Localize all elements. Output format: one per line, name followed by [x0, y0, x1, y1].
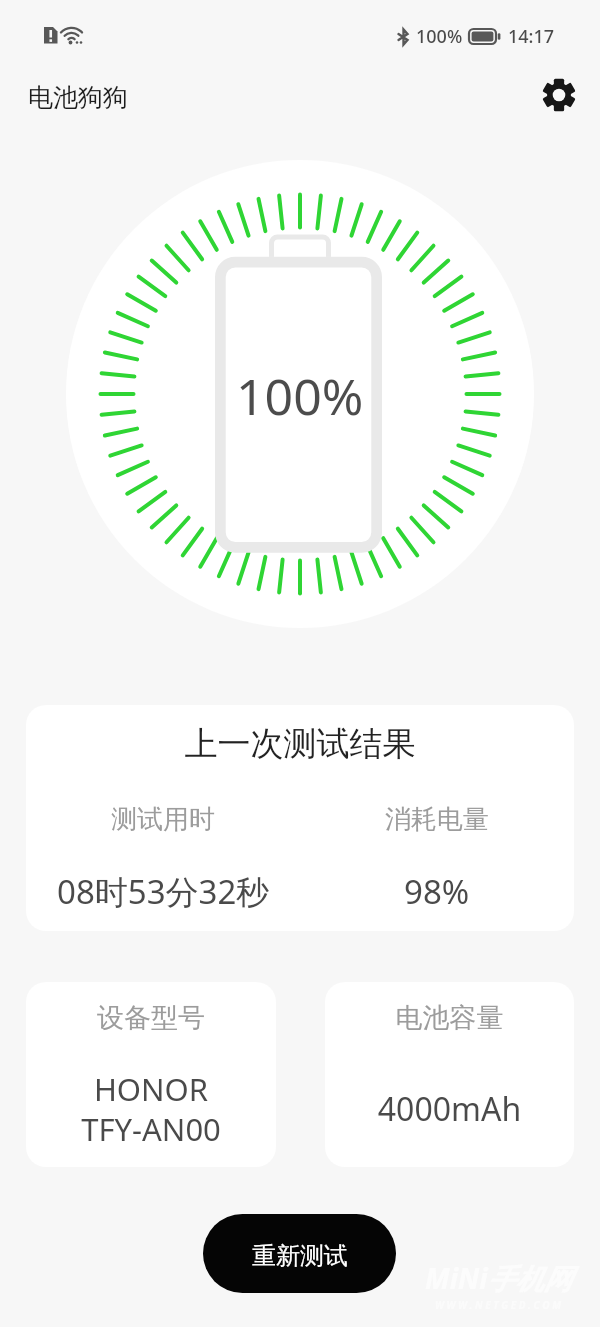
- staticText: 消耗电量: [385, 803, 489, 836]
- staticText: 08时53分32秒: [57, 869, 270, 914]
- button[interactable]: 上一次测试结果: [26, 705, 574, 931]
- staticText: 电池容量: [325, 1001, 574, 1035]
- button[interactable]: Settings: [536, 72, 582, 118]
- staticText: 电池狗狗: [28, 82, 128, 113]
- button[interactable]: 电池容量: [325, 982, 574, 1167]
- button[interactable]: 设备型号: [26, 982, 276, 1167]
- staticText: 100%: [416, 24, 463, 49]
- staticText: 14:17: [508, 24, 555, 49]
- staticText: HONOR TFY-AN00: [26, 1068, 276, 1150]
- staticText: 测试用时: [111, 803, 215, 836]
- staticText: 100%: [236, 362, 364, 430]
- staticText: 4000mAh: [325, 1087, 574, 1131]
- staticText: 98%: [404, 869, 470, 914]
- staticText: 上一次测试结果: [26, 723, 574, 765]
- button[interactable]: 重新测试: [203, 1214, 396, 1293]
- staticText: 重新测试: [252, 1241, 348, 1271]
- staticText: 设备型号: [26, 1001, 276, 1035]
